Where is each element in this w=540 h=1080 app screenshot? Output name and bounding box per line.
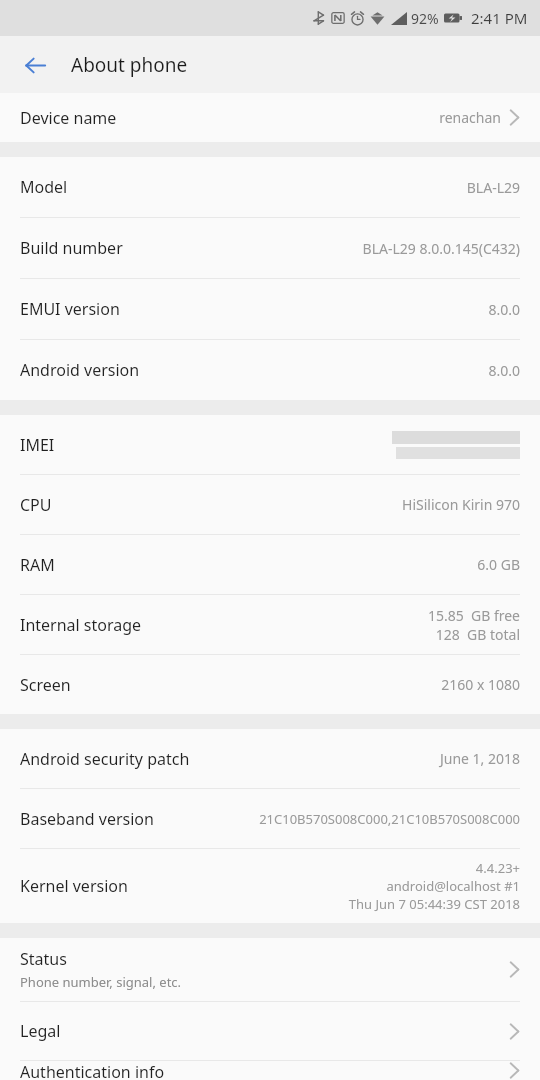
staticText: June 1, 2018 xyxy=(439,749,520,768)
button[interactable]: Kernel version xyxy=(0,849,540,923)
staticText: 2160 x 1080 xyxy=(441,675,520,694)
button[interactable]: Build number xyxy=(0,218,540,279)
staticText: 15.85 GB free 128 GB total xyxy=(427,606,520,644)
staticText: renachan xyxy=(439,108,501,127)
staticText: Android version xyxy=(20,359,140,381)
button[interactable]: Back xyxy=(14,44,56,86)
staticText: Phone number, signal, etc. xyxy=(20,973,182,991)
staticText: Legal xyxy=(20,1020,61,1042)
staticText: Authentication info xyxy=(20,1061,165,1080)
staticText: Device name xyxy=(20,107,117,129)
staticText: Status xyxy=(20,948,67,970)
staticText: About phone xyxy=(71,52,188,78)
staticText: RAM xyxy=(20,554,55,576)
staticText: Internal storage xyxy=(20,614,142,636)
staticText: 6.0 GB xyxy=(477,555,520,574)
staticText: Build number xyxy=(20,237,123,259)
button[interactable]: IMEI xyxy=(0,415,540,475)
staticText: IMEI xyxy=(20,434,55,456)
staticText: Model xyxy=(20,176,68,198)
button[interactable]: Android security patch xyxy=(0,729,540,789)
staticText: 92% xyxy=(411,9,439,28)
staticText: 8.0.0 xyxy=(488,361,520,380)
button[interactable]: Internal storage xyxy=(0,595,540,655)
button[interactable]: Legal xyxy=(0,1002,540,1061)
staticText: HiSilicon Kirin 970 xyxy=(402,495,520,514)
staticText: Android security patch xyxy=(20,748,190,770)
staticText: BLA-L29 8.0.0.145(C432) xyxy=(362,239,520,258)
button[interactable]: Authentication info xyxy=(0,1061,540,1080)
staticText: 8.0.0 xyxy=(488,300,520,319)
button[interactable]: CPU xyxy=(0,475,540,535)
staticText: CPU xyxy=(20,494,52,516)
button[interactable]: Android version xyxy=(0,340,540,400)
button[interactable]: EMUI version xyxy=(0,279,540,340)
staticText: 4.4.23+ android@localhost #1 Thu Jun 7 0… xyxy=(348,859,520,913)
button[interactable]: Device name xyxy=(0,93,540,142)
button[interactable]: Model xyxy=(0,157,540,218)
staticText: Screen xyxy=(20,674,71,696)
staticText: BLA-L29 xyxy=(466,178,520,197)
staticText: Baseband version xyxy=(20,808,154,830)
staticText: EMUI version xyxy=(20,298,120,320)
button[interactable]: RAM xyxy=(0,535,540,595)
button[interactable]: Baseband version xyxy=(0,789,540,849)
button[interactable]: Status xyxy=(0,938,540,1002)
staticText: 21C10B570S008C000,21C10B570S008C000 xyxy=(259,810,520,828)
staticText: 2:41 PM xyxy=(471,8,528,28)
staticText: Kernel version xyxy=(20,875,128,897)
button[interactable]: Screen xyxy=(0,655,540,714)
